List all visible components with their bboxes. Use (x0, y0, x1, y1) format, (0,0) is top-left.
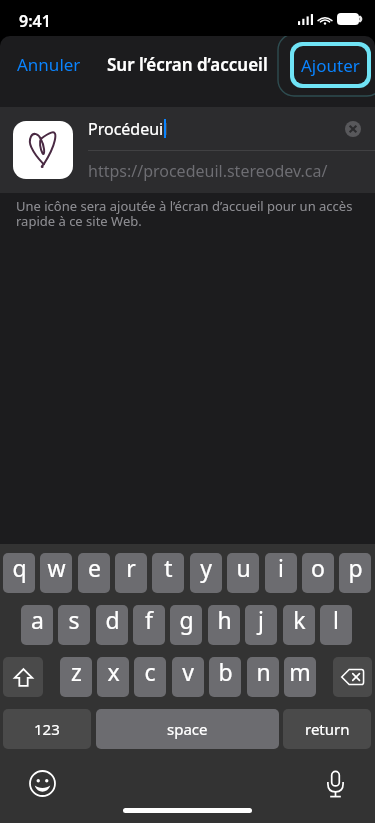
button[interactable]: w (40, 553, 72, 593)
button[interactable]: j (245, 605, 277, 645)
staticText: return (305, 719, 350, 739)
staticText: Ajouter (301, 54, 360, 77)
staticText: n (256, 657, 271, 687)
button[interactable]: Effacer (345, 121, 361, 137)
staticText: p (348, 553, 363, 583)
button[interactable]: e (78, 553, 110, 593)
button[interactable]: Annuler (8, 47, 90, 82)
staticText: m (289, 657, 311, 687)
staticText: j (258, 605, 264, 635)
staticText: Procédeuil (88, 118, 168, 140)
button[interactable]: h (208, 605, 240, 645)
staticText: i (278, 553, 284, 583)
button[interactable]: x (97, 657, 129, 697)
staticText: Une icône sera ajoutée à l’écran d’accue… (16, 197, 359, 230)
staticText: x (107, 657, 120, 687)
staticText: e (88, 553, 101, 583)
button[interactable]: Maj (3, 657, 43, 697)
button[interactable]: b (209, 657, 241, 697)
staticText: u (236, 553, 251, 583)
button[interactable]: c (134, 657, 166, 697)
staticText: q (12, 553, 27, 583)
button[interactable]: Emoji (29, 770, 56, 797)
staticText: d (105, 605, 120, 635)
button[interactable]: g (170, 605, 202, 645)
button[interactable]: Dictée (326, 770, 345, 798)
staticText: Sur l’écran d’accueil (107, 53, 268, 76)
staticText: l (333, 605, 339, 635)
staticText: g (179, 605, 194, 635)
staticText: a (31, 605, 44, 635)
staticText: k (293, 605, 306, 635)
staticText: c (144, 657, 156, 687)
staticText: y (200, 553, 212, 583)
button[interactable]: z (60, 657, 92, 697)
button[interactable]: p (339, 553, 371, 593)
staticText: Annuler (17, 53, 81, 76)
staticText: 123 (34, 719, 60, 739)
staticText: s (68, 605, 80, 635)
button[interactable]: v (172, 657, 204, 697)
staticText: z (71, 657, 82, 687)
staticText: space (167, 719, 208, 739)
button[interactable]: a (21, 605, 53, 645)
button[interactable]: Retour arrière (333, 657, 372, 697)
button[interactable]: q (3, 553, 35, 593)
button[interactable]: d (96, 605, 128, 645)
button[interactable]: i (265, 553, 297, 593)
button[interactable]: k (283, 605, 315, 645)
button[interactable]: t (152, 553, 184, 593)
staticText: t (164, 553, 173, 583)
button[interactable]: l (320, 605, 352, 645)
staticText: o (311, 553, 325, 583)
button[interactable]: m (284, 657, 316, 697)
staticText: f (145, 605, 153, 635)
staticText: https://procedeuil.stereodev.ca/ (88, 160, 328, 182)
button[interactable]: Ajouter (294, 46, 367, 84)
button[interactable]: return (283, 709, 371, 749)
button[interactable]: u (227, 553, 259, 593)
staticText: w (47, 553, 66, 583)
button[interactable]: y (190, 553, 222, 593)
staticText: h (217, 605, 232, 635)
button[interactable]: r (115, 553, 147, 593)
staticText: 9:41 (19, 10, 51, 32)
button[interactable]: space (96, 709, 279, 749)
staticText: v (182, 657, 194, 687)
staticText: r (126, 553, 136, 583)
button[interactable]: s (58, 605, 90, 645)
staticText: b (218, 657, 233, 687)
button[interactable]: f (133, 605, 165, 645)
button[interactable]: o (302, 553, 334, 593)
button[interactable]: n (247, 657, 279, 697)
button[interactable]: 123 (3, 709, 91, 749)
